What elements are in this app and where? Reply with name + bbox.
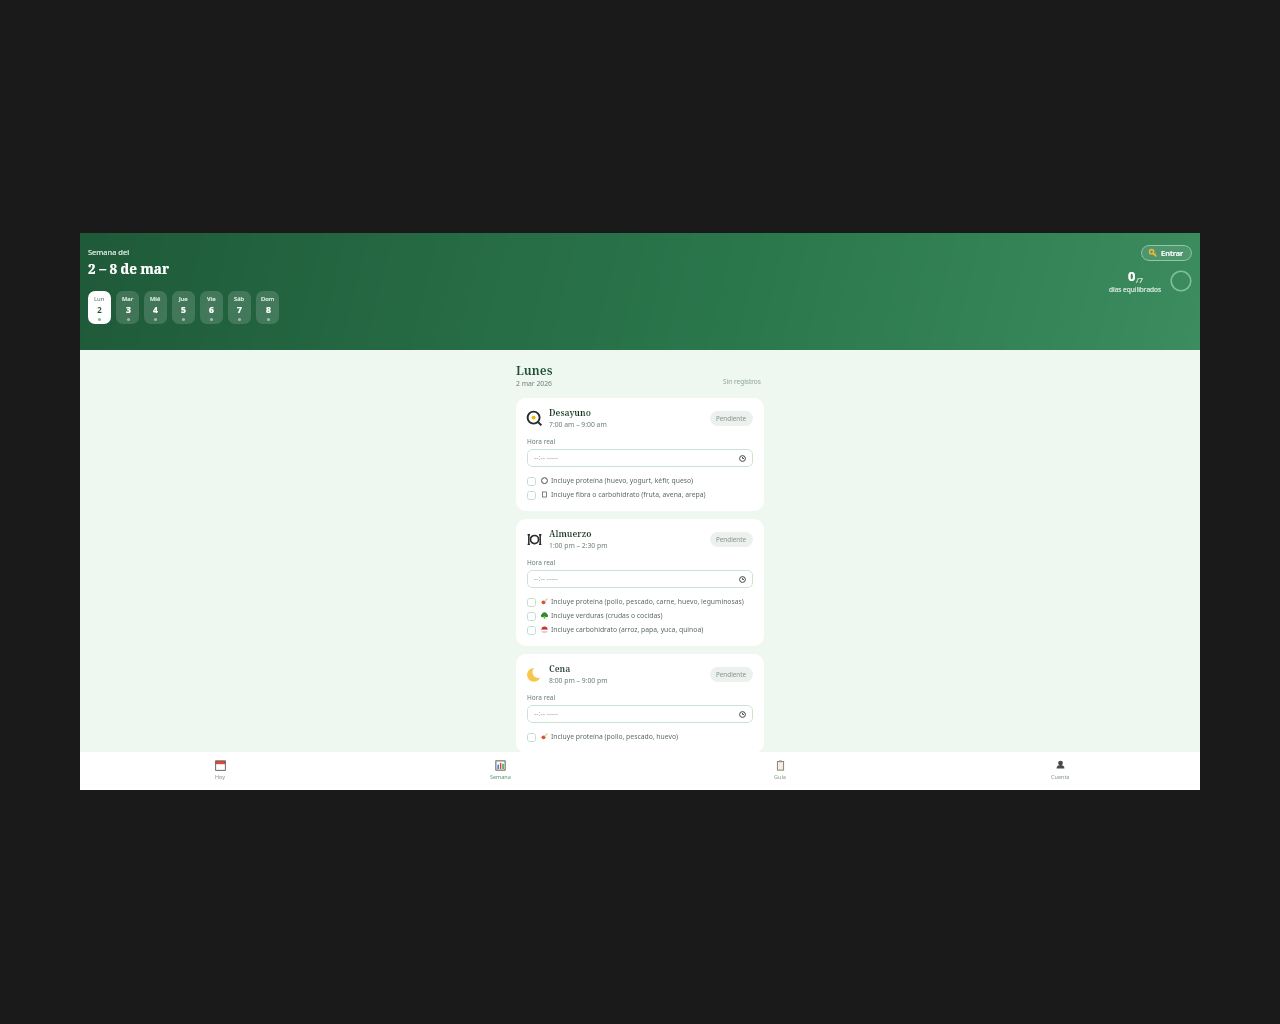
staticText: 7 (237, 304, 242, 316)
staticText: Almuerzo (549, 528, 592, 540)
other: Seleccionar hora (739, 711, 746, 718)
staticText: Hora real (527, 693, 556, 702)
staticText: 2 (97, 304, 102, 316)
button[interactable]: Pendiente (710, 532, 753, 547)
staticText: 5 (181, 304, 186, 316)
staticText: 4 (153, 304, 158, 316)
staticText: Sáb (234, 295, 245, 303)
staticText: Pendiente (716, 414, 747, 423)
button[interactable]: Desayuno (516, 398, 764, 511)
button[interactable]: Sáb (228, 291, 251, 324)
button[interactable]: Entrar (1141, 245, 1192, 261)
staticText: Guía (774, 773, 786, 780)
staticText: Cena (549, 663, 571, 675)
staticText: 2 – 8 de mar (88, 260, 169, 278)
staticText: Lunes (516, 362, 553, 378)
staticText: Hora real (527, 437, 556, 446)
staticText: Vie (207, 295, 216, 303)
staticText: Incluye verduras (crudas o cocidas) (551, 611, 753, 620)
other: Seleccionar hora (739, 455, 746, 462)
staticText: Pendiente (716, 535, 747, 544)
button[interactable]: Sin registros (720, 375, 764, 388)
button[interactable]: Incluye verduras (crudas o cocidas) (527, 609, 753, 623)
staticText: 2 mar 2026 (516, 379, 552, 388)
button[interactable]: Incluye proteína (pollo, pescado, carne,… (527, 595, 753, 609)
staticText: Mar (122, 295, 134, 303)
button[interactable]: --:-- ----- (527, 705, 753, 723)
button[interactable]: Incluye fibra o carbohidrato (fruta, ave… (527, 488, 753, 502)
button[interactable]: Pendiente (710, 411, 753, 426)
staticText: Incluye fibra o carbohidrato (fruta, ave… (551, 490, 753, 499)
staticText: Jue (179, 295, 188, 303)
staticText: 1:00 pm – 2:30 pm (549, 541, 608, 550)
button[interactable]: Lun (88, 291, 111, 324)
staticText: Incluye proteína (pollo, pescado, carne,… (551, 597, 753, 606)
staticText: Incluye proteína (huevo, yogurt, kéfir, … (551, 476, 753, 485)
button[interactable]: --:-- ----- (527, 570, 753, 588)
staticText: Semana del (88, 247, 130, 257)
staticText: Desayuno (549, 407, 591, 419)
button[interactable]: Incluye proteína (pollo, pescado, huevo) (527, 730, 753, 744)
staticText: Pendiente (716, 670, 747, 679)
other: Seleccionar hora (739, 576, 746, 583)
button[interactable]: Dom (256, 291, 279, 324)
button[interactable]: Pendiente (710, 667, 753, 682)
button[interactable]: Mié (144, 291, 167, 324)
button[interactable]: Jue (172, 291, 195, 324)
button[interactable]: Cena (516, 654, 764, 753)
button[interactable]: Incluye carbohidrato (arroz, papa, yuca,… (527, 623, 753, 637)
staticText: Lun (94, 295, 105, 303)
button[interactable]: Incluye proteína (huevo, yogurt, kéfir, … (527, 474, 753, 488)
staticText: Entrar (1161, 248, 1184, 258)
staticText: días equilibrados (1109, 285, 1162, 294)
button[interactable]: Cuenta (920, 755, 1200, 790)
staticText: Semana (490, 773, 511, 780)
staticText: Hora real (527, 558, 556, 567)
staticText: --:-- ----- (534, 574, 558, 584)
button[interactable]: Semana (360, 755, 640, 790)
staticText: 8 (266, 304, 271, 316)
staticText: --:-- ----- (534, 453, 558, 463)
button[interactable]: Hoy (80, 755, 360, 790)
staticText: 8:00 pm – 9:00 pm (549, 676, 608, 685)
button[interactable]: Almuerzo (516, 519, 764, 646)
button[interactable]: Mar (116, 291, 139, 324)
staticText: Incluye proteína (pollo, pescado, huevo) (551, 732, 753, 741)
staticText: --:-- ----- (534, 709, 558, 719)
staticText: 7:00 am – 9:00 am (549, 420, 607, 429)
staticText: Sin registros (723, 377, 761, 386)
staticText: 0 (1128, 267, 1136, 285)
staticText: 3 (126, 304, 131, 316)
staticText: /7 (1136, 275, 1144, 285)
staticText: 6 (209, 304, 214, 316)
staticText: Hoy (215, 773, 226, 780)
button[interactable]: Vie (200, 291, 223, 324)
button[interactable]: Guía (640, 755, 920, 790)
button[interactable]: --:-- ----- (527, 449, 753, 467)
staticText: Cuenta (1051, 773, 1070, 780)
staticText: Mié (150, 295, 161, 303)
staticText: Incluye carbohidrato (arroz, papa, yuca,… (551, 625, 753, 634)
staticText: Dom (261, 295, 275, 303)
